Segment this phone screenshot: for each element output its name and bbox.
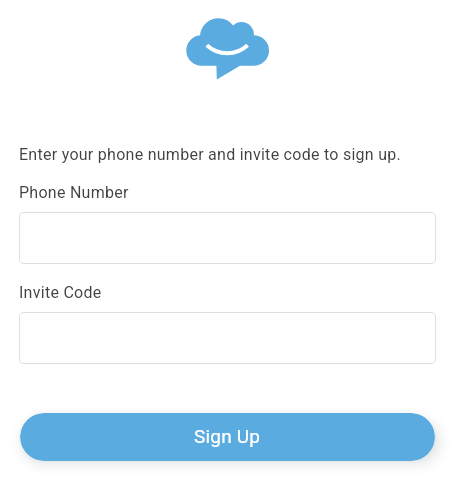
staticText: Enter your phone number and invite code … [19, 145, 402, 164]
other: App logo [186, 16, 269, 82]
button[interactable]: Phone Number [19, 212, 436, 264]
button[interactable]: Invite Code [19, 312, 436, 364]
staticText: Phone Number [19, 183, 129, 202]
staticText: Invite Code [19, 283, 102, 302]
button[interactable]: Sign Up [20, 413, 435, 461]
staticText: Sign Up [194, 425, 261, 447]
